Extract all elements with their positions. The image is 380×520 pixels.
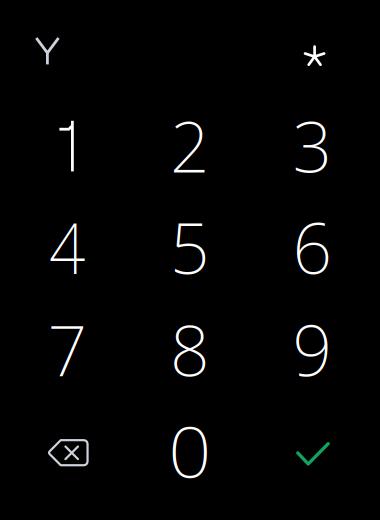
button[interactable]: 1 (5, 95, 128, 197)
button[interactable]: 5 (129, 196, 251, 298)
staticText: 9 (292, 303, 332, 395)
staticText: 8 (170, 303, 210, 395)
button[interactable]: 3 (251, 95, 374, 197)
staticText: 7 (47, 303, 87, 395)
staticText: 4 (47, 201, 87, 293)
staticText: 5 (170, 201, 210, 293)
staticText: 6 (292, 201, 332, 293)
button[interactable]: 7 (6, 298, 129, 400)
staticText: 2 (170, 100, 210, 192)
button[interactable]: 2 (129, 95, 251, 197)
button[interactable]: 0 (129, 400, 251, 502)
button[interactable]: 4 (6, 196, 129, 298)
staticText: 0 (170, 405, 210, 497)
staticText: 3 (292, 100, 332, 192)
button[interactable]: Delete (7, 402, 129, 504)
button[interactable]: Confirm (252, 403, 374, 505)
button[interactable]: 6 (251, 196, 374, 298)
button[interactable]: 8 (129, 298, 251, 400)
button[interactable]: 9 (251, 298, 374, 400)
